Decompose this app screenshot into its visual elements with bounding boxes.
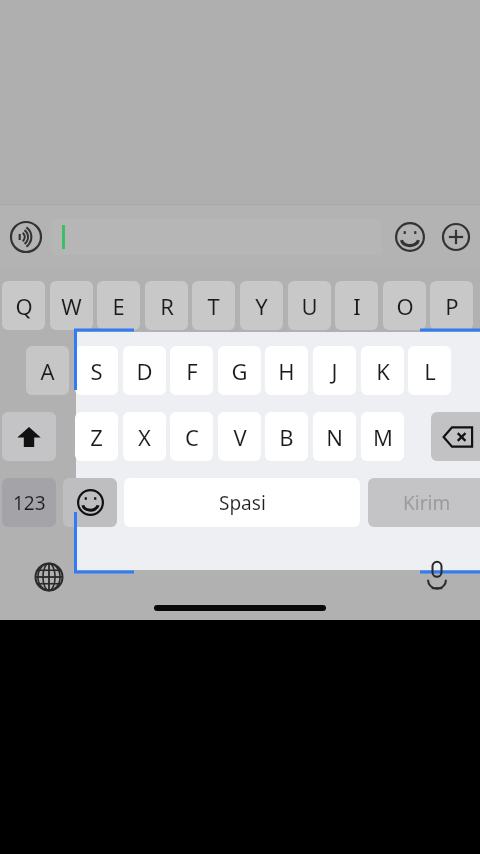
button[interactable]: R [145, 281, 188, 330]
button[interactable]: G [218, 346, 261, 395]
staticText: U [301, 291, 318, 321]
button[interactable]: Change language [30, 558, 68, 596]
button[interactable]: C [170, 412, 213, 461]
staticText: J [331, 356, 338, 386]
staticText: M [373, 422, 393, 452]
staticText: K [376, 356, 390, 386]
staticText: B [279, 422, 294, 452]
staticText: S [90, 356, 103, 386]
staticText: C [185, 422, 199, 452]
staticText: G [231, 356, 248, 386]
button[interactable]: Attach [438, 219, 474, 255]
staticText: Spasi [219, 490, 266, 516]
button[interactable]: J [313, 346, 356, 395]
button[interactable]: Y [240, 281, 283, 330]
button[interactable]: K [361, 346, 404, 395]
staticText: T [207, 291, 220, 321]
staticText: R [160, 291, 174, 321]
staticText: Z [90, 422, 103, 452]
button[interactable]: X [123, 412, 166, 461]
button[interactable]: V [218, 412, 261, 461]
staticText: I [353, 291, 361, 321]
button[interactable]: Kirim [368, 478, 480, 527]
staticText: L [424, 356, 436, 386]
button[interactable]: U [288, 281, 331, 330]
button[interactable]: Z [75, 412, 118, 461]
staticText: E [112, 291, 125, 321]
button[interactable]: Shift [2, 412, 56, 461]
staticText: F [186, 356, 198, 386]
button[interactable]: S [75, 346, 118, 395]
button[interactable]: A [26, 346, 69, 395]
button[interactable]: B [265, 412, 308, 461]
button[interactable]: W [50, 281, 93, 330]
staticText: Y [255, 291, 268, 321]
button[interactable]: Backspace [431, 412, 480, 461]
button[interactable]: Emoji keyboard [63, 478, 117, 527]
button[interactable]: P [430, 281, 473, 330]
button[interactable]: Emoji [392, 219, 428, 255]
button[interactable]: F [170, 346, 213, 395]
staticText: A [40, 356, 55, 386]
staticText: X [138, 422, 151, 452]
staticText: O [396, 291, 414, 321]
button[interactable]: I [335, 281, 378, 330]
button[interactable]: Voice message [8, 219, 44, 255]
staticText: P [445, 291, 459, 321]
staticText: 123 [13, 490, 46, 516]
staticText: Q [15, 291, 33, 321]
button[interactable]: T [192, 281, 235, 330]
button[interactable]: E [97, 281, 140, 330]
button[interactable]: Spasi [124, 478, 360, 527]
button[interactable]: D [123, 346, 166, 395]
staticText: Kirim [403, 490, 451, 516]
button[interactable]: Q [2, 281, 45, 330]
button[interactable]: M [361, 412, 404, 461]
button[interactable]: Voice input [418, 556, 456, 594]
button[interactable]: N [313, 412, 356, 461]
button[interactable]: 123 [2, 478, 56, 527]
button[interactable] [52, 219, 382, 255]
staticText: D [136, 356, 153, 386]
button[interactable]: O [383, 281, 426, 330]
button[interactable]: L [408, 346, 451, 395]
button[interactable]: H [265, 346, 308, 395]
staticText: V [233, 422, 247, 452]
staticText: N [326, 422, 343, 452]
staticText: W [61, 291, 82, 321]
staticText: H [278, 356, 295, 386]
